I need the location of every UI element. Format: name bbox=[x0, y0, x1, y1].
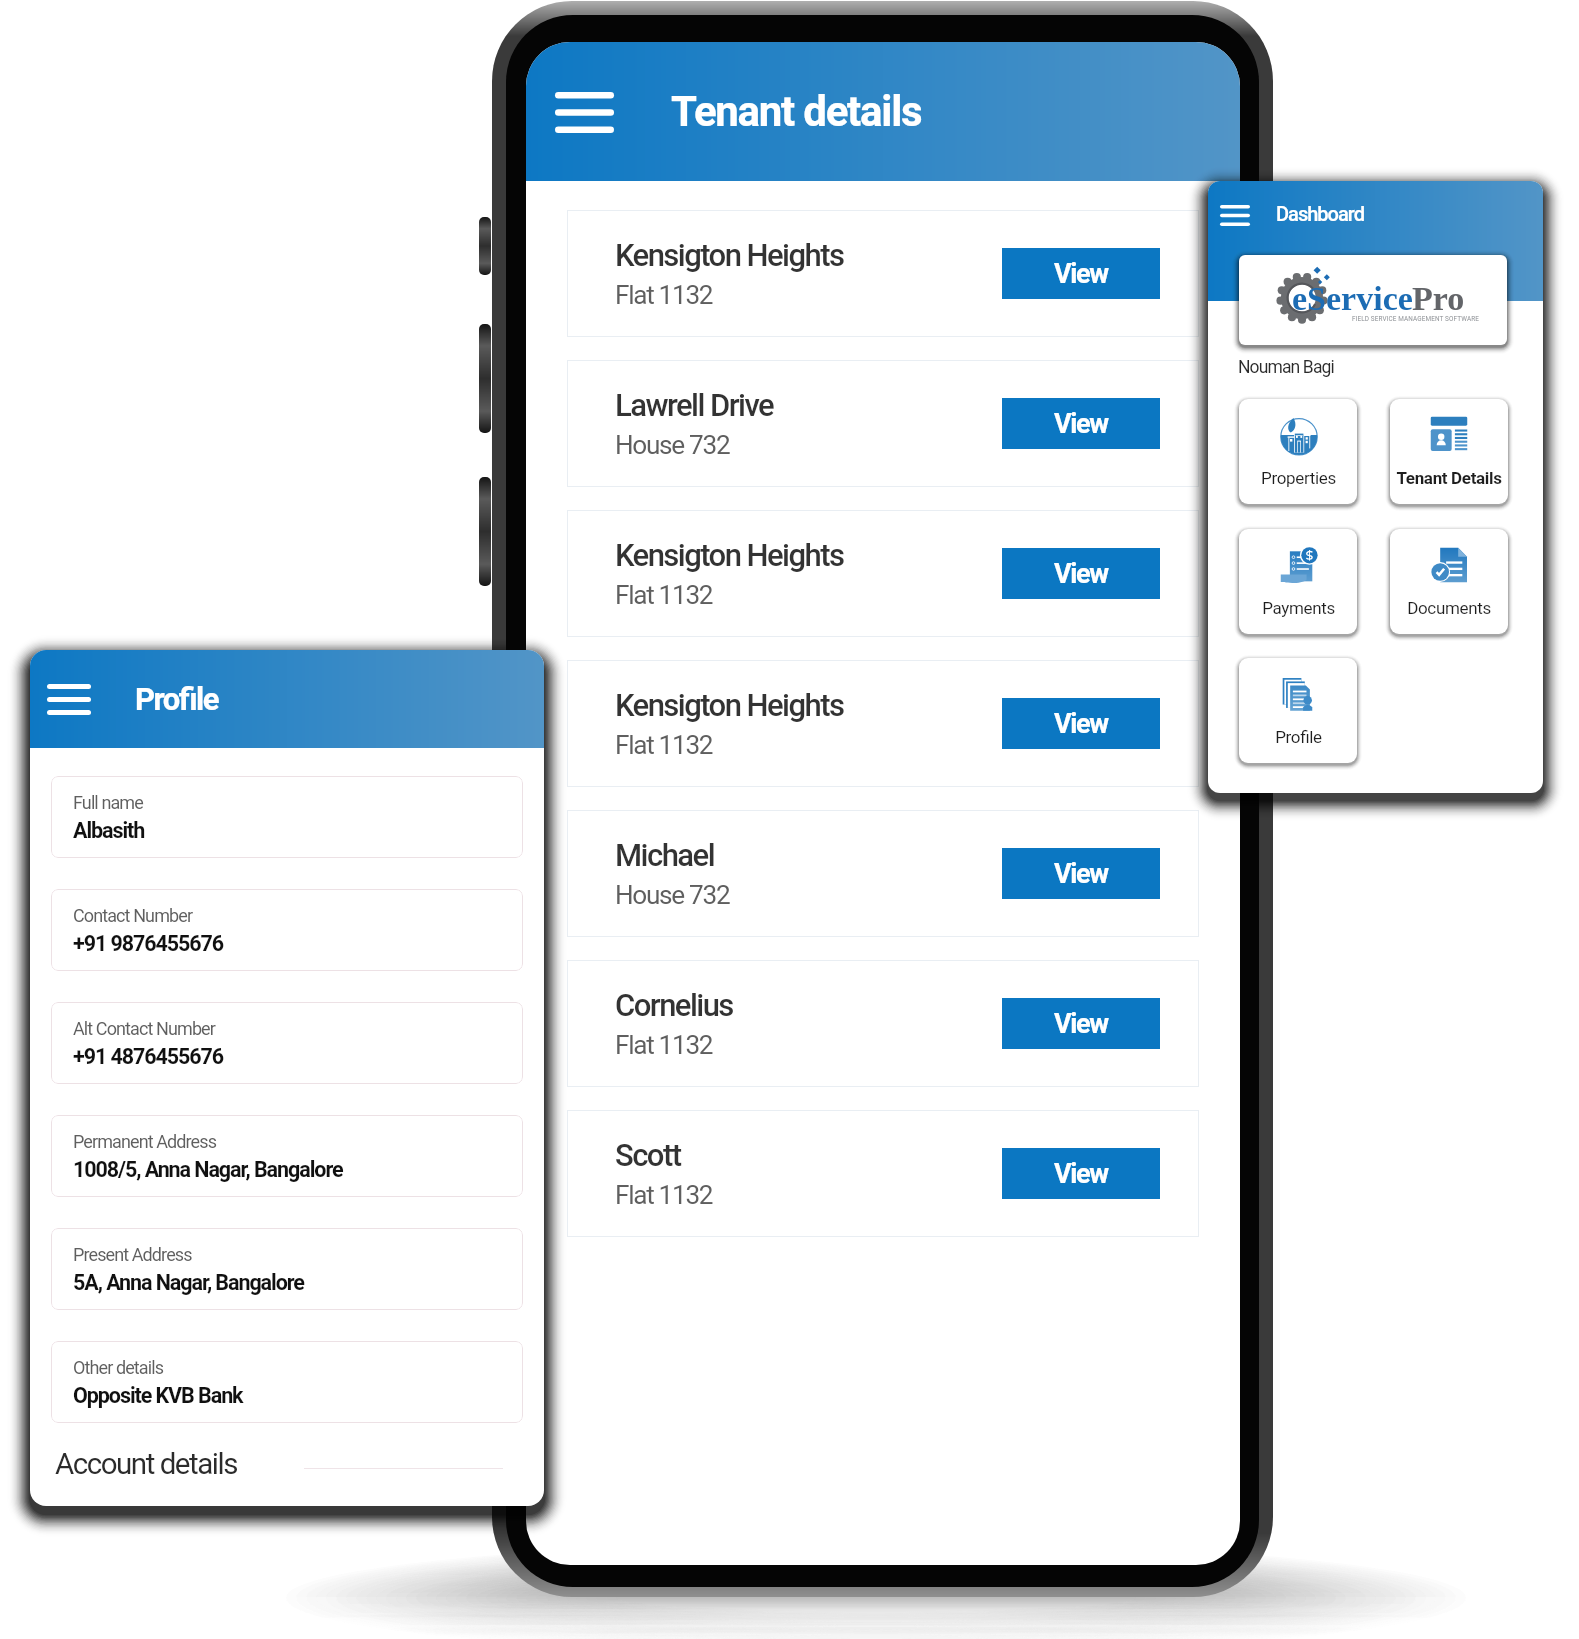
staticText: Kensigton Heights bbox=[615, 687, 844, 723]
staticText: Full name bbox=[73, 792, 143, 813]
button[interactable]: View bbox=[1002, 998, 1160, 1049]
staticText: Profile bbox=[1275, 727, 1322, 747]
staticText: Kensigton Heights bbox=[615, 537, 844, 573]
staticText: +91 9876455676 bbox=[73, 931, 224, 956]
staticText: eService bbox=[1292, 280, 1413, 318]
button[interactable]: Contact Number bbox=[51, 889, 523, 971]
button[interactable]: Lawrell Drive bbox=[567, 360, 1199, 487]
staticText: Permanent Address bbox=[73, 1131, 217, 1152]
staticText: Present Address bbox=[73, 1244, 192, 1265]
button[interactable]: Tenant Details bbox=[1390, 399, 1508, 504]
staticText: Flat 1132 bbox=[615, 580, 713, 611]
button[interactable]: Properties bbox=[1239, 399, 1357, 504]
button[interactable]: View bbox=[1002, 848, 1160, 899]
staticText: Pro bbox=[1412, 280, 1465, 318]
button[interactable]: Other details bbox=[51, 1341, 523, 1423]
button[interactable]: Documents bbox=[1390, 529, 1508, 634]
staticText: Flat 1132 bbox=[615, 730, 713, 761]
staticText: Flat 1132 bbox=[615, 1030, 713, 1061]
staticText: Flat 1132 bbox=[615, 280, 713, 311]
button[interactable]: Payments bbox=[1239, 529, 1357, 634]
staticText: Kensigton Heights bbox=[615, 237, 844, 273]
staticText: View bbox=[1054, 1008, 1108, 1040]
button[interactable]: Full name bbox=[51, 776, 523, 858]
button[interactable]: Present Address bbox=[51, 1228, 523, 1310]
button[interactable]: View bbox=[1002, 398, 1160, 449]
staticText: FIELD SERVICE MANAGEMENT SOFTWARE bbox=[1352, 315, 1479, 323]
button[interactable]: Permanent Address bbox=[51, 1115, 523, 1197]
button[interactable]: Alt Contact Number bbox=[51, 1002, 523, 1084]
button[interactable]: Kensigton Heights bbox=[567, 510, 1199, 637]
staticText: House 732 bbox=[615, 430, 730, 461]
staticText: Scott bbox=[615, 1137, 681, 1173]
staticText: +91 4876455676 bbox=[73, 1044, 224, 1069]
staticText: Documents bbox=[1407, 598, 1491, 618]
button[interactable]: Open navigation menu bbox=[540, 78, 628, 146]
staticText: View bbox=[1054, 258, 1108, 290]
staticText: Opposite KVB Bank bbox=[73, 1383, 243, 1408]
staticText: View bbox=[1054, 558, 1108, 590]
staticText: Albasith bbox=[73, 818, 145, 843]
staticText: Tenant Details bbox=[1396, 468, 1502, 488]
button[interactable]: Kensigton Heights bbox=[567, 660, 1199, 787]
button[interactable]: Kensigton Heights bbox=[567, 210, 1199, 337]
staticText: Lawrell Drive bbox=[615, 387, 774, 423]
staticText: 1008/5, Anna Nagar, Bangalore bbox=[73, 1157, 343, 1182]
button[interactable]: Open navigation menu bbox=[38, 672, 100, 726]
button[interactable]: Profile bbox=[1239, 658, 1357, 763]
staticText: 5A, Anna Nagar, Bangalore bbox=[73, 1270, 304, 1295]
staticText: Nouman Bagi bbox=[1238, 357, 1334, 378]
staticText: Michael bbox=[615, 837, 715, 873]
button[interactable]: Cornelius bbox=[567, 960, 1199, 1087]
button[interactable]: Michael bbox=[567, 810, 1199, 937]
staticText: View bbox=[1054, 708, 1108, 740]
button[interactable]: Scott bbox=[567, 1110, 1199, 1237]
staticText: Flat 1132 bbox=[615, 1180, 713, 1211]
staticText: Account details bbox=[55, 1447, 237, 1482]
staticText: Payments bbox=[1262, 598, 1335, 618]
button[interactable]: View bbox=[1002, 1148, 1160, 1199]
staticText: View bbox=[1054, 858, 1108, 890]
staticText: Properties bbox=[1261, 468, 1336, 488]
button[interactable]: View bbox=[1002, 548, 1160, 599]
staticText: View bbox=[1054, 1158, 1108, 1190]
staticText: Alt Contact Number bbox=[73, 1018, 215, 1039]
staticText: Dashboard bbox=[1276, 202, 1364, 225]
staticText: Contact Number bbox=[73, 905, 193, 926]
button[interactable]: View bbox=[1002, 698, 1160, 749]
staticText: Profile bbox=[135, 681, 218, 717]
button[interactable]: View bbox=[1002, 248, 1160, 299]
staticText: View bbox=[1054, 408, 1108, 440]
staticText: Tenant details bbox=[671, 87, 922, 136]
staticText: Cornelius bbox=[615, 987, 733, 1023]
staticText: Other details bbox=[73, 1357, 164, 1378]
button[interactable]: Open navigation menu bbox=[1212, 193, 1258, 237]
staticText: House 732 bbox=[615, 880, 730, 911]
